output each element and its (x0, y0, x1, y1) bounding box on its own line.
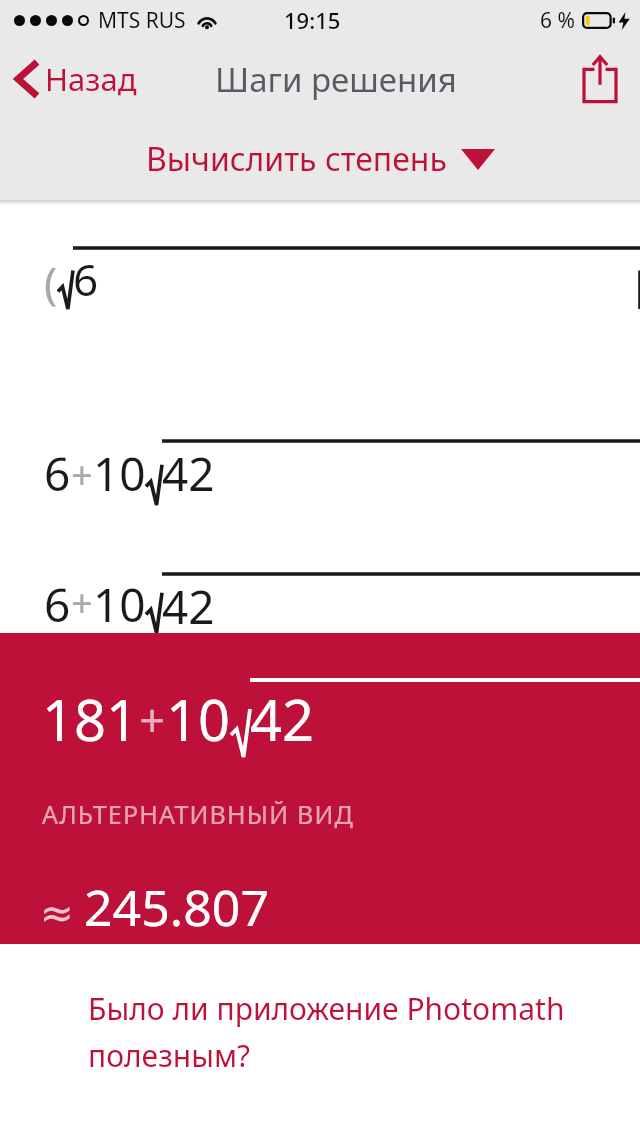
staticText: Шаги решения (215, 57, 457, 102)
staticText: АЛЬТЕРНАТИВНЫЙ ВИД (42, 797, 355, 831)
staticText: 42 (250, 681, 315, 757)
staticText: 6 (73, 249, 99, 309)
button[interactable]: Было ли приложение Photomath (88, 988, 565, 1076)
staticText: ( (44, 252, 58, 312)
staticText: MTS RUS (98, 6, 186, 35)
staticText: 10 (166, 681, 231, 757)
button[interactable]: Share (572, 47, 628, 111)
staticText: ≈ (40, 890, 74, 937)
staticText: Назад (45, 58, 137, 100)
staticText: 6 (44, 442, 71, 505)
staticText: + (139, 688, 166, 751)
staticText: + (71, 448, 93, 500)
staticText: + (71, 576, 93, 628)
staticText: 181 (42, 681, 139, 757)
staticText: 10 (93, 442, 146, 505)
staticText: Вычислить степень (146, 137, 447, 181)
staticText: 6 (44, 573, 71, 633)
button[interactable]: Вычислить степень (132, 129, 509, 189)
staticText: 42 (162, 442, 215, 505)
button[interactable]: Назад (0, 52, 147, 106)
staticText: 245.807 (84, 873, 269, 941)
staticText: 6 % (540, 6, 575, 35)
staticText: полезным? (88, 1035, 251, 1076)
staticText: 19:15 (284, 5, 341, 35)
staticText: 10 (93, 573, 146, 633)
staticText: Было ли приложение Photomath (88, 988, 565, 1029)
staticText: 42 (162, 575, 215, 633)
